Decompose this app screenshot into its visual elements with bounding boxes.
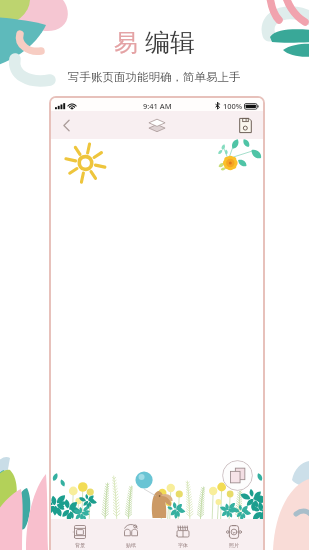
staticText: 100% <box>223 101 243 111</box>
staticText: 易 <box>114 28 138 58</box>
button[interactable]: Pages <box>222 460 253 491</box>
staticText: 贴纸 <box>126 542 136 548</box>
staticText: 写手账页面功能明确，简单易上手 <box>68 70 241 84</box>
staticText: 背景 <box>75 542 85 548</box>
staticText: 字体 <box>178 542 188 548</box>
button[interactable]: Save <box>232 112 259 139</box>
button[interactable]: 照片 <box>212 523 256 548</box>
button[interactable]: 字体 <box>161 523 205 548</box>
button[interactable]: 贴纸 <box>109 523 153 548</box>
staticText: 编辑 <box>145 27 195 58</box>
button[interactable]: Layers <box>143 111 171 139</box>
staticText: 照片 <box>229 542 239 548</box>
button[interactable]: 背景 <box>58 523 102 548</box>
button[interactable]: Back <box>53 112 80 139</box>
staticText: 9:41 AM <box>143 101 172 111</box>
